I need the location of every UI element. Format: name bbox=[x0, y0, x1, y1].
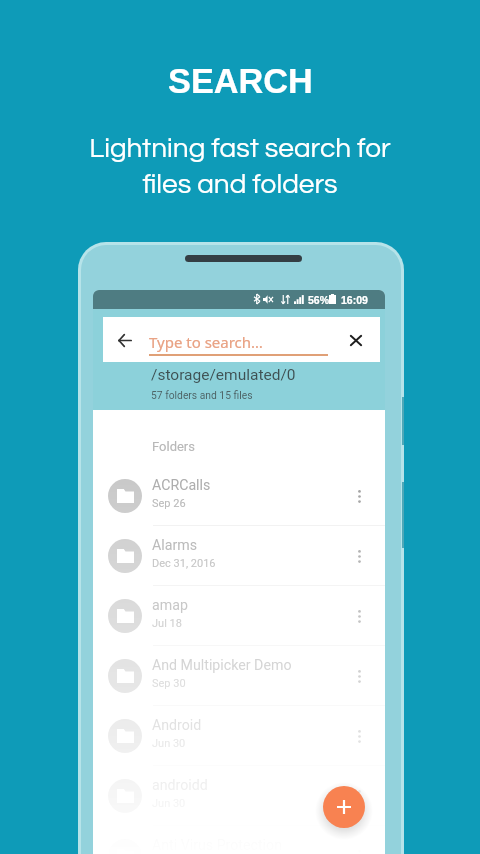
staticText: 56% bbox=[308, 294, 330, 306]
staticText: amap bbox=[152, 597, 188, 614]
staticText: Lightning fast search for files and fold… bbox=[89, 134, 391, 199]
staticText: Jul 18 bbox=[152, 617, 182, 630]
staticText: Jun 30 bbox=[152, 737, 186, 750]
button[interactable]: More options bbox=[345, 602, 373, 630]
staticText: 16:09 bbox=[341, 294, 368, 306]
staticText: Jun 30 bbox=[152, 797, 186, 810]
button[interactable]: Alarms bbox=[93, 526, 385, 586]
button[interactable]: More options bbox=[345, 482, 373, 510]
staticText: Dec 31, 2016 bbox=[152, 557, 216, 570]
staticText: Alarms bbox=[152, 537, 197, 554]
staticText: androidd bbox=[152, 777, 208, 794]
button[interactable]: amap bbox=[93, 586, 385, 646]
staticText: 57 folders and 15 files bbox=[151, 389, 253, 401]
button[interactable]: Back bbox=[111, 326, 139, 354]
button[interactable]: ACRCalls bbox=[93, 466, 385, 526]
staticText: Sep 30 bbox=[152, 677, 186, 690]
staticText: Sep 26 bbox=[152, 497, 186, 510]
staticText: Type to search… bbox=[149, 332, 263, 352]
button[interactable]: Add bbox=[323, 786, 365, 828]
staticText: /storage/emulated/0 bbox=[151, 366, 296, 384]
staticText: And Multipicker Demo bbox=[152, 657, 292, 674]
staticText: Folders bbox=[152, 439, 195, 454]
button[interactable]: Android bbox=[93, 706, 385, 766]
staticText: Android bbox=[152, 717, 202, 734]
button[interactable]: More options bbox=[345, 662, 373, 690]
staticText: ACRCalls bbox=[152, 477, 211, 494]
button[interactable]: More options bbox=[345, 782, 373, 810]
staticText: SEARCH bbox=[168, 62, 313, 100]
button[interactable]: androidd bbox=[93, 766, 385, 826]
button[interactable]: More options bbox=[345, 722, 373, 750]
button[interactable]: More options bbox=[345, 542, 373, 570]
button[interactable]: Anti Virus Protection bbox=[93, 826, 385, 854]
other: Bluetooth bbox=[254, 294, 260, 304]
button[interactable]: Clear search bbox=[342, 326, 370, 354]
button[interactable]: And Multipicker Demo bbox=[93, 646, 385, 706]
